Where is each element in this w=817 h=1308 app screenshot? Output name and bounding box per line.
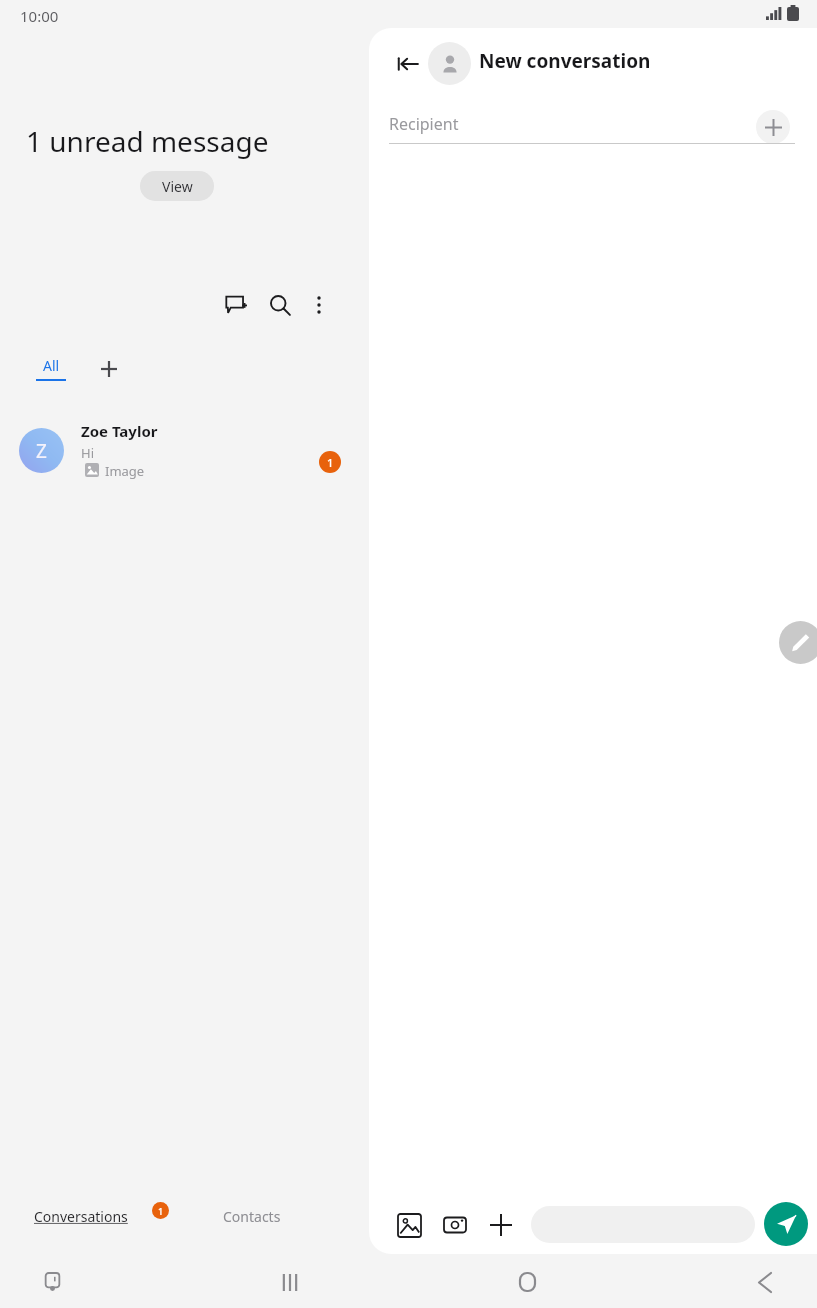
button[interactable]: Compose bbox=[779, 621, 817, 664]
button[interactable]: All bbox=[36, 356, 66, 381]
button[interactable]: Add recipient bbox=[754, 108, 792, 146]
button[interactable]: Z bbox=[0, 410, 369, 476]
staticText: 10:00 bbox=[20, 6, 59, 26]
button[interactable]: Back bbox=[743, 1260, 787, 1304]
staticText: Conversations bbox=[34, 1207, 128, 1226]
button[interactable]: New message bbox=[219, 288, 253, 322]
staticText: Hi bbox=[81, 444, 94, 462]
staticText: Recipient bbox=[389, 113, 459, 135]
staticText: 1 bbox=[327, 455, 334, 470]
staticText: 1 bbox=[158, 1205, 164, 1217]
button[interactable]: Send bbox=[764, 1202, 808, 1246]
button[interactable]: More options bbox=[302, 288, 336, 322]
staticText: Z bbox=[36, 438, 47, 464]
button[interactable]: View bbox=[140, 171, 214, 201]
staticText: Zoe Taylor bbox=[81, 421, 158, 441]
button[interactable]: Hide keyboard bbox=[30, 1260, 74, 1304]
button[interactable]: Add category bbox=[92, 352, 126, 386]
button[interactable]: Back bbox=[389, 45, 427, 83]
button[interactable]: Gallery bbox=[390, 1206, 428, 1244]
staticText: Image bbox=[105, 462, 145, 480]
button[interactable]: Home bbox=[505, 1260, 549, 1304]
button[interactable]: Search bbox=[263, 288, 297, 322]
button[interactable]: Camera bbox=[436, 1206, 474, 1244]
staticText: All bbox=[43, 356, 60, 375]
staticText: New conversation bbox=[479, 48, 651, 74]
button[interactable]: More attachments bbox=[482, 1206, 520, 1244]
staticText: View bbox=[162, 177, 193, 196]
button[interactable]: Conversations bbox=[34, 1207, 128, 1226]
staticText: 1 unread message bbox=[26, 122, 269, 160]
button[interactable]: Contacts bbox=[223, 1207, 281, 1226]
staticText: Contacts bbox=[223, 1207, 281, 1226]
button[interactable]: Recents bbox=[268, 1260, 312, 1304]
